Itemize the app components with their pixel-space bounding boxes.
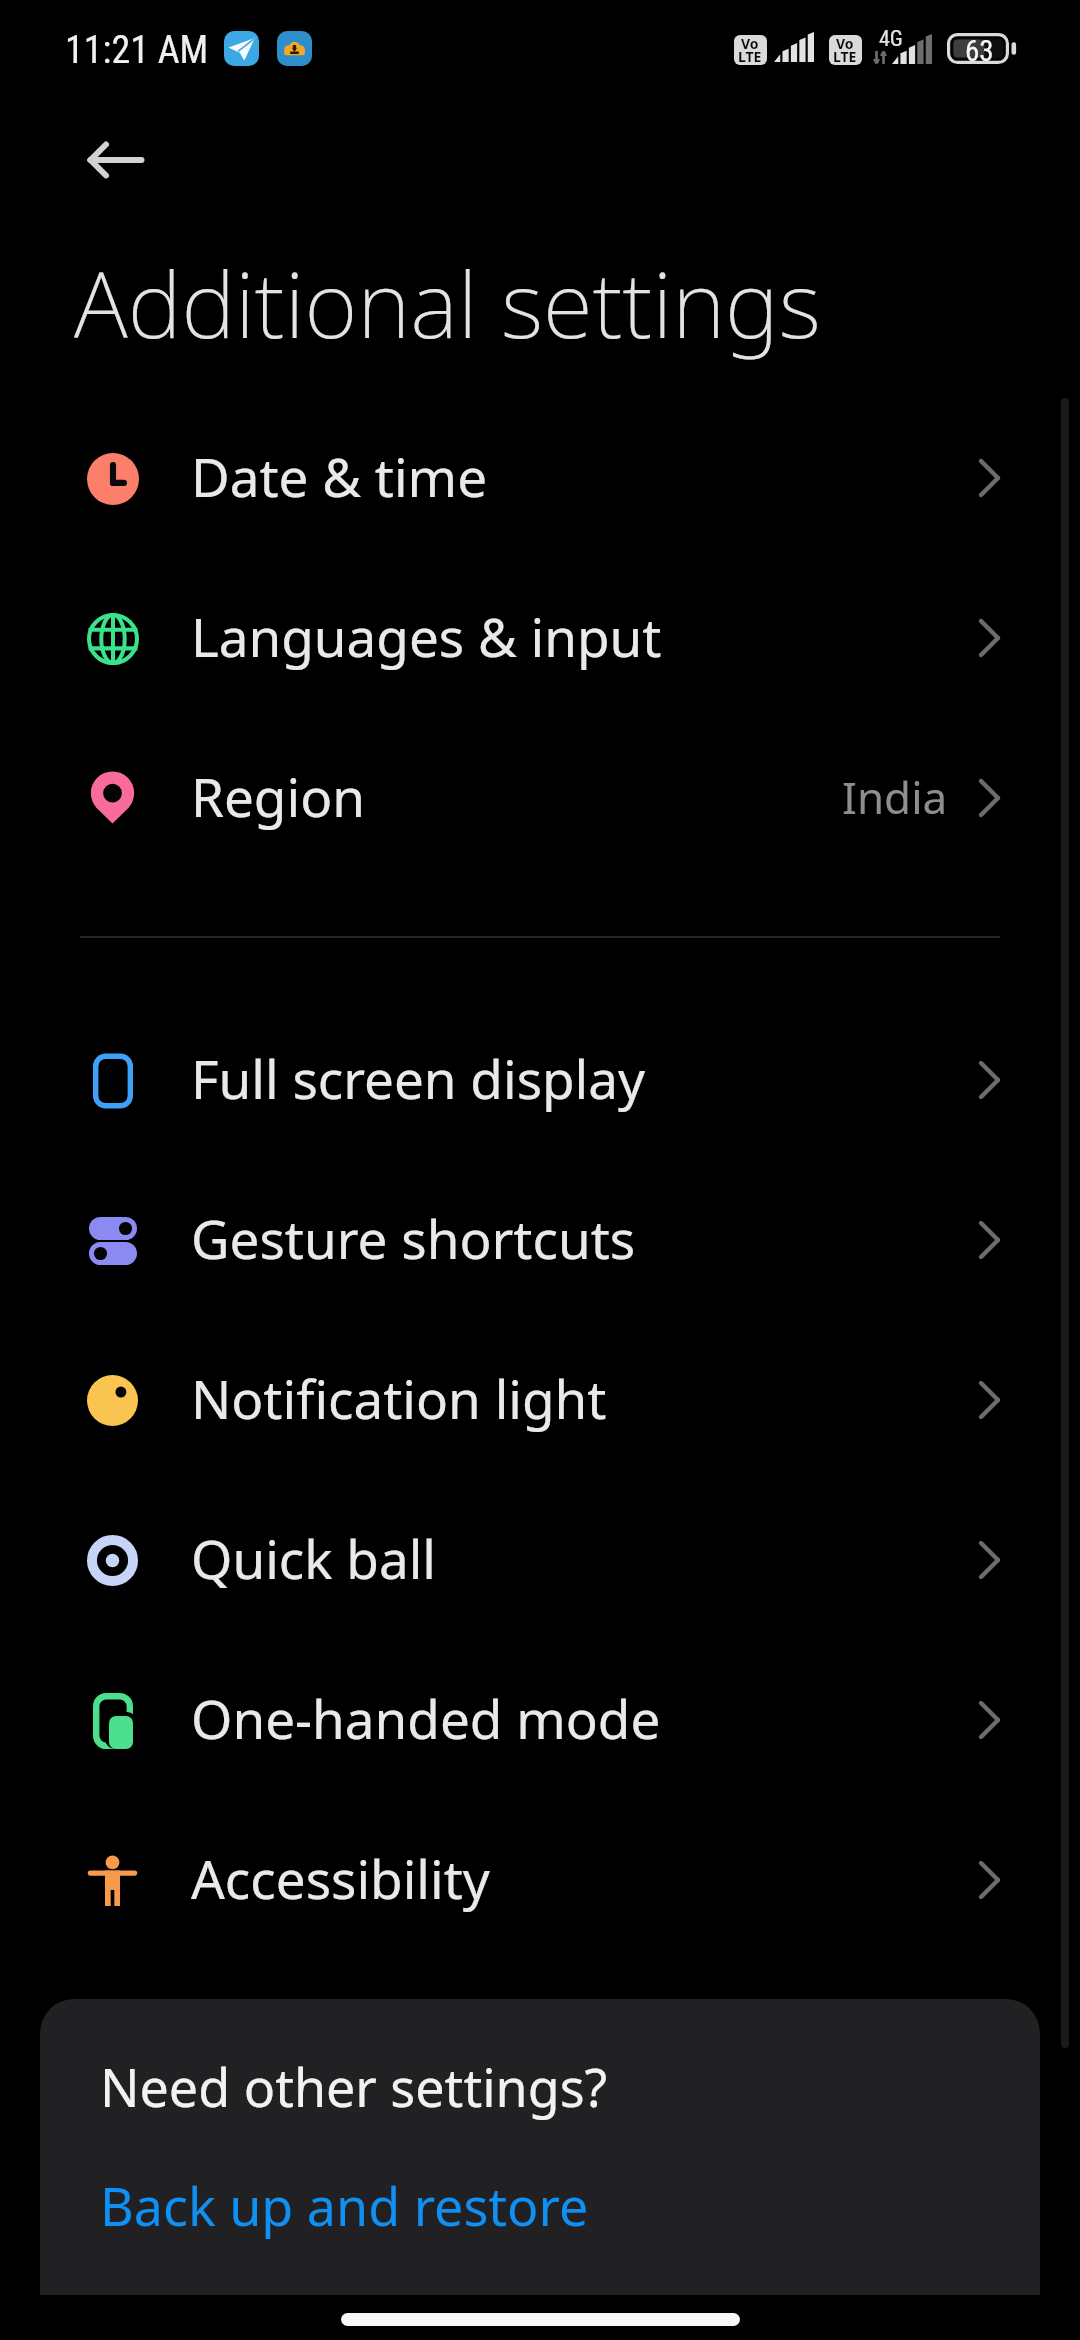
staticText: Vo [741,35,759,53]
staticText: Accessibility [191,1842,490,1914]
staticText: Gesture shortcuts [191,1202,636,1274]
button[interactable]: Date & time [0,398,1080,558]
button[interactable]: Quick ball [0,1480,1080,1640]
staticText: Need other settings? [100,2051,608,2122]
staticText: Region [191,760,365,832]
button[interactable]: Notification light [0,1320,1080,1480]
button[interactable]: Gesture shortcuts [0,1160,1080,1320]
staticText: India [842,767,948,827]
button[interactable]: Full screen display [0,1000,1080,1160]
staticText: One-handed mode [191,1682,661,1754]
staticText: 4G [879,26,903,52]
staticText: Languages & input [191,600,662,672]
staticText: Quick ball [191,1522,437,1594]
button[interactable]: Back [64,108,168,212]
staticText: 63 [965,34,994,65]
button[interactable]: Languages & input [0,558,1080,718]
staticText: Additional settings [74,241,821,365]
staticText: Vo [836,35,854,53]
staticText: Full screen display [191,1042,646,1114]
staticText: LTE [833,47,857,65]
button[interactable]: One-handed mode [0,1640,1080,1800]
button[interactable]: Region [0,718,1080,878]
staticText: 11:21 AM [65,28,209,73]
staticText: LTE [738,47,762,65]
staticText: Date & time [191,440,488,512]
staticText: Notification light [191,1362,607,1434]
button[interactable]: Accessibility [0,1800,1080,1960]
button[interactable]: Back up and restore [100,2170,589,2241]
